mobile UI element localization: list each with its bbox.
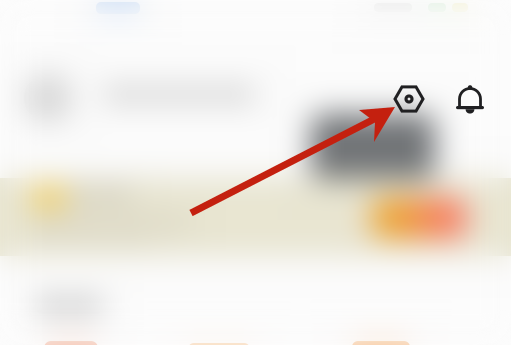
button[interactable]: Notifications bbox=[450, 79, 490, 119]
button[interactable]: Settings bbox=[389, 79, 429, 119]
